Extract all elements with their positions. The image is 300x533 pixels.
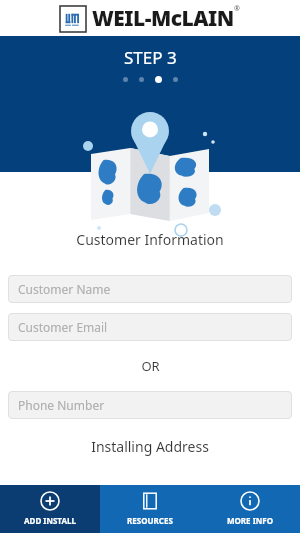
button[interactable]: ADD INSTALL <box>0 485 100 533</box>
staticText: Customer Information <box>76 230 224 249</box>
staticText: STEP 3 <box>124 46 177 69</box>
staticText: Phone Number <box>18 397 105 413</box>
button[interactable]: Customer Name <box>8 275 292 303</box>
button[interactable]: MORE INFO <box>200 485 300 533</box>
staticText: WEIL-McLAIN <box>92 4 234 33</box>
button[interactable]: Customer Email <box>8 313 292 341</box>
button[interactable]: Phone Number <box>8 391 292 419</box>
staticText: Customer Name <box>18 281 111 297</box>
button[interactable]: RESOURCES <box>100 485 200 533</box>
staticText: Installing Address <box>91 437 209 456</box>
staticText: ® <box>234 4 240 14</box>
staticText: Customer Email <box>18 319 108 335</box>
staticText: ADD INSTALL <box>24 515 76 526</box>
staticText: MORE INFO <box>227 515 274 526</box>
staticText: RESOURCES <box>127 515 173 526</box>
staticText: OR <box>141 357 160 375</box>
